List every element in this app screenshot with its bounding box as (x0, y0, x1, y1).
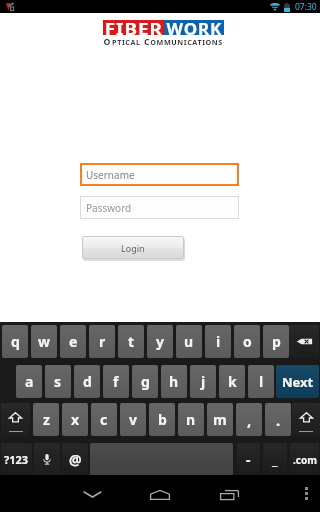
staticText: q (11, 332, 20, 351)
staticText: w (38, 332, 50, 351)
button[interactable]: _ (263, 443, 287, 476)
staticText: ?123 (4, 452, 29, 467)
button[interactable]: .com (290, 443, 319, 476)
button[interactable]: f (103, 365, 129, 398)
button[interactable]: p (263, 325, 289, 358)
button[interactable]: d (74, 365, 100, 398)
button[interactable]: ?123 (1, 443, 32, 476)
button[interactable]: - (237, 443, 260, 476)
staticText: h (169, 372, 179, 391)
staticText: k (228, 372, 237, 391)
staticText: _ (272, 451, 278, 469)
button[interactable]: l (248, 365, 274, 398)
button[interactable]: r (89, 325, 115, 358)
button[interactable]: o (234, 325, 260, 358)
staticText: m (213, 410, 227, 429)
button[interactable]: Hide keyboard (75, 475, 110, 512)
staticText: d (83, 372, 92, 391)
button[interactable]: s (45, 365, 71, 398)
staticText: Login (121, 242, 145, 254)
staticText: p (272, 332, 281, 351)
staticText: r (99, 332, 106, 351)
staticText: t (128, 332, 135, 351)
button[interactable]: , (236, 403, 262, 436)
button[interactable]: u (176, 325, 202, 358)
button[interactable]: Recent apps (211, 475, 247, 512)
button[interactable]: k (219, 365, 245, 398)
button[interactable]: Voice input (34, 443, 60, 476)
button[interactable]: Backspace (289, 325, 319, 358)
button[interactable]: x (62, 403, 88, 436)
button[interactable]: m (207, 403, 233, 436)
staticText: OMMUNICATIONS (150, 38, 223, 47)
button[interactable] (90, 443, 233, 476)
staticText: f (113, 372, 119, 391)
staticText: v (129, 410, 137, 429)
staticText: a (25, 372, 34, 391)
button[interactable]: Shift (1, 403, 30, 436)
button[interactable]: j (190, 365, 216, 398)
button[interactable]: . (265, 403, 291, 436)
button[interactable]: t (118, 325, 144, 358)
staticText: e (69, 332, 78, 351)
button[interactable]: c (91, 403, 117, 436)
staticText: PTICAL (112, 38, 141, 47)
staticText: z (43, 410, 50, 429)
staticText: l (259, 372, 264, 391)
button[interactable]: w (31, 325, 57, 358)
button[interactable]: b (149, 403, 175, 436)
button[interactable]: Next (276, 365, 319, 398)
button[interactable]: n (178, 403, 204, 436)
button[interactable]: a (16, 365, 42, 398)
staticText: b (158, 410, 167, 429)
button[interactable]: v (120, 403, 146, 436)
button[interactable]: Shift (292, 403, 320, 436)
staticText: s (54, 372, 62, 391)
staticText: C (144, 36, 150, 47)
staticText: FIBER (105, 18, 163, 39)
button[interactable]: g (132, 365, 158, 398)
staticText: j (201, 372, 206, 391)
button[interactable]: Login (82, 236, 184, 259)
button[interactable]: @ (62, 443, 88, 476)
staticText: O (104, 36, 112, 47)
button[interactable]: Password (80, 196, 239, 219)
staticText: Password (86, 201, 132, 215)
staticText: . (276, 410, 281, 430)
staticText: o (243, 332, 252, 351)
staticText: y (156, 332, 164, 351)
button[interactable]: y (147, 325, 173, 358)
button[interactable]: Username (80, 163, 239, 186)
button[interactable]: h (161, 365, 187, 398)
button[interactable]: Home (142, 475, 178, 512)
staticText: u (184, 332, 194, 351)
button[interactable]: z (33, 403, 59, 436)
staticText: c (100, 410, 108, 429)
staticText: x (71, 410, 80, 429)
button[interactable]: i (205, 325, 231, 358)
staticText: Username (86, 168, 135, 182)
staticText: @ (69, 450, 82, 469)
staticText: WORK (166, 18, 222, 39)
staticText: - (246, 450, 251, 469)
button[interactable]: More options (294, 475, 318, 512)
staticText: , (247, 410, 252, 430)
staticText: .com (293, 453, 317, 467)
button[interactable]: q (2, 325, 28, 358)
staticText: n (186, 410, 196, 429)
staticText: Next (282, 373, 314, 391)
staticText: g (141, 372, 150, 391)
staticText: i (216, 332, 221, 351)
button[interactable]: e (60, 325, 86, 358)
staticText: 07:30 (295, 1, 317, 13)
